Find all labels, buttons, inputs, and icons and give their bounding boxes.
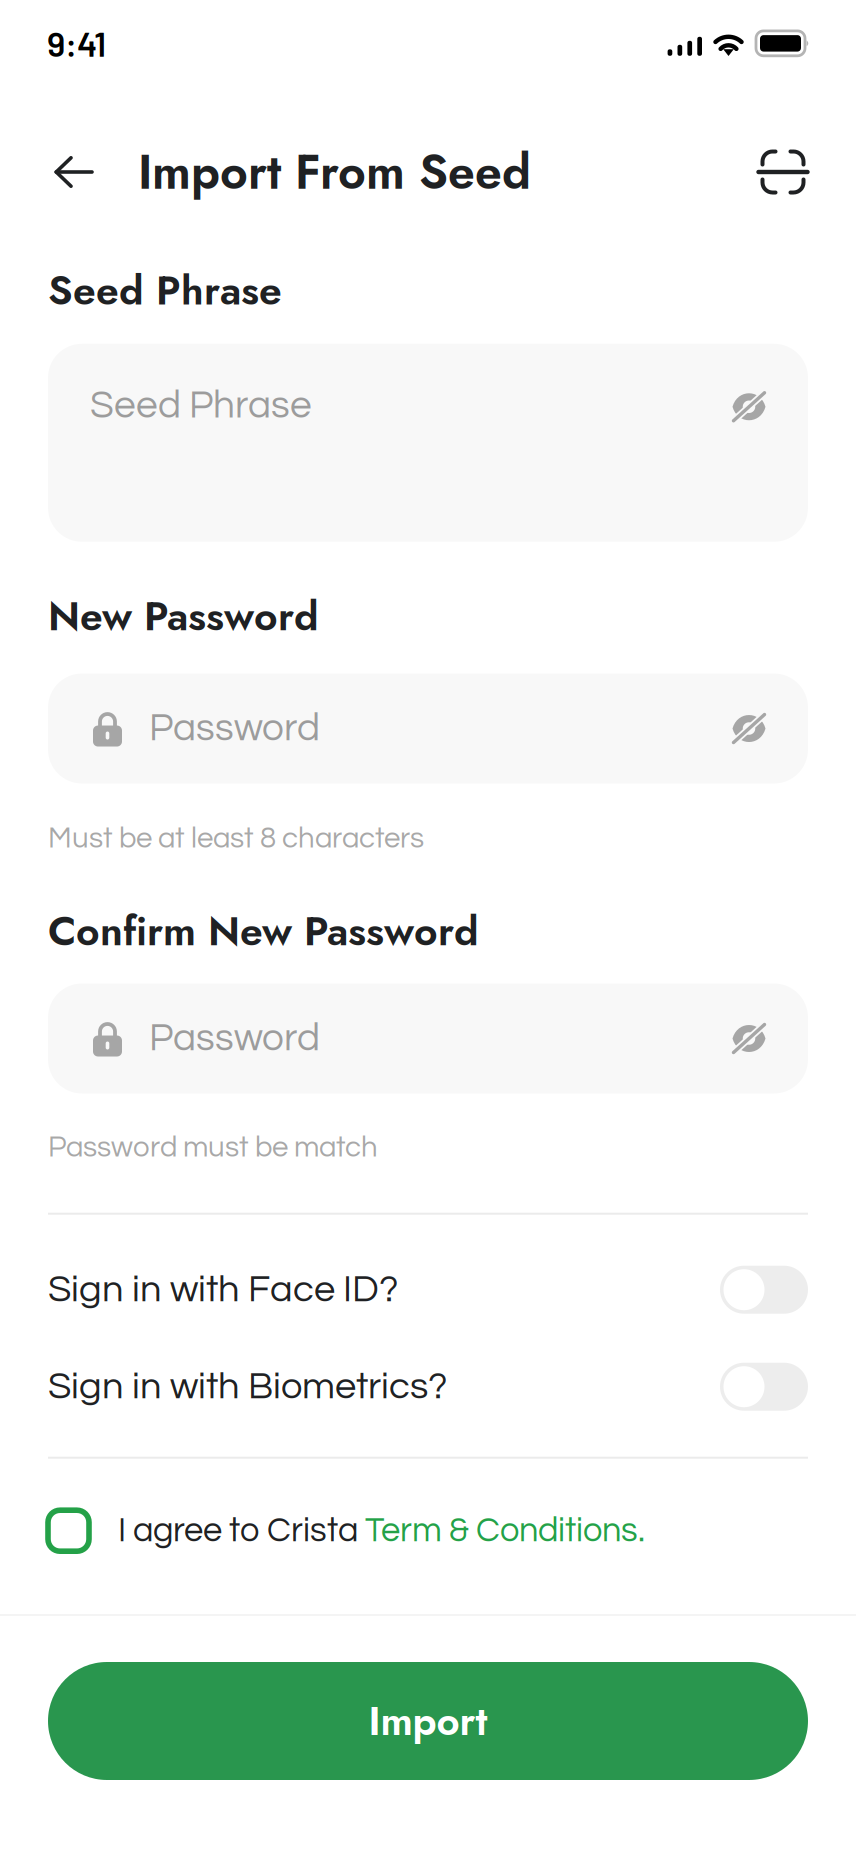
staticText: Import From Seed [138,137,531,207]
staticText: Password [149,1019,320,1058]
button[interactable]: Show password [726,1017,772,1059]
button[interactable]: Import [48,1662,808,1780]
button[interactable]: Sign in with Face ID? [48,1265,808,1315]
staticText: New Password [48,587,319,646]
button[interactable]: Show password [726,707,772,749]
staticText: Seed Phrase [90,386,312,426]
staticText: Seed Phrase [48,261,282,320]
button[interactable]: Scan QR code [754,138,812,206]
staticText: 9:41 [47,22,106,64]
staticText: I agree to Crista [118,1513,365,1548]
staticText: Password must be match [48,1132,378,1163]
staticText: Must be at least 8 characters [48,823,424,854]
staticText: Term & Conditions. [365,1513,645,1548]
button[interactable]: Back [46,141,102,203]
staticText: Password [149,709,320,748]
staticText: Sign in with Biometrics? [48,1367,447,1406]
staticText: Import [368,1692,487,1750]
staticText: Sign in with Face ID? [48,1270,398,1309]
button[interactable]: I agree to Crista [48,1501,808,1561]
button[interactable]: Show seed phrase [726,386,772,428]
staticText: Confirm New Password [48,902,479,960]
button[interactable]: Sign in with Biometrics? [48,1362,808,1412]
